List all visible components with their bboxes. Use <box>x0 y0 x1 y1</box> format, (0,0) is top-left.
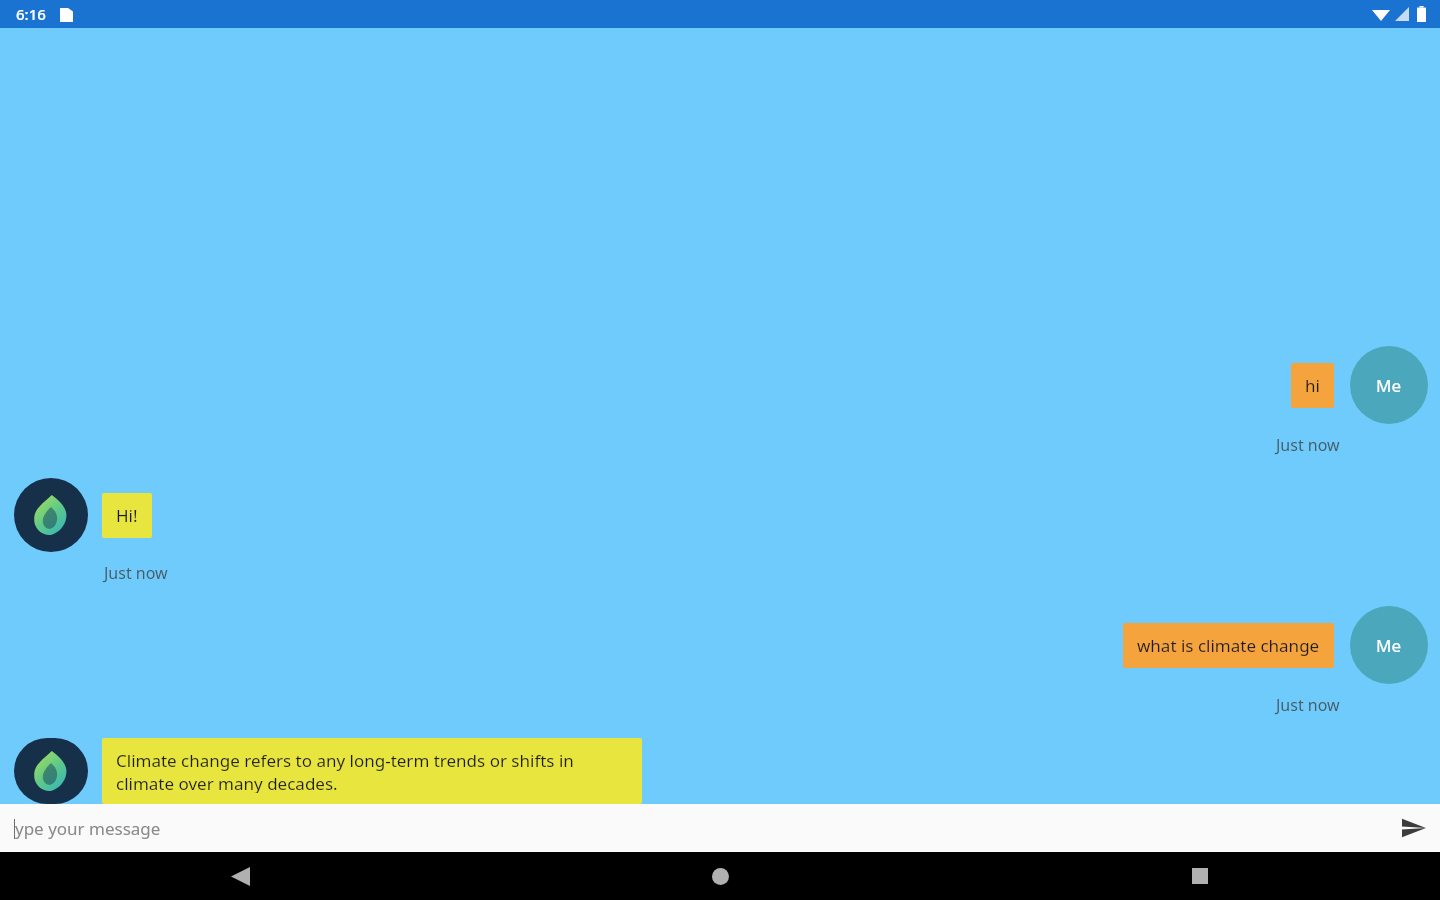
button[interactable]: hi <box>1291 363 1334 408</box>
button[interactable]: Back <box>0 852 480 900</box>
button[interactable]: what is climate change <box>1123 623 1334 668</box>
staticText: Hi! <box>116 504 138 527</box>
staticText: Me <box>1376 634 1402 657</box>
staticText: Climate change refers to any long-term t… <box>116 749 628 793</box>
button[interactable]: Climate change refers to any long-term t… <box>102 738 642 804</box>
button[interactable]: Send <box>1388 804 1440 852</box>
button[interactable]: Recents <box>960 852 1440 900</box>
staticText: what is climate change <box>1137 634 1320 657</box>
button[interactable]: ype your message <box>0 804 1388 852</box>
staticText: Just now <box>104 562 168 584</box>
staticText: ype your message <box>15 817 161 840</box>
staticText: Me <box>1376 374 1402 397</box>
button[interactable]: Home <box>480 852 960 900</box>
button[interactable]: Me <box>1350 346 1428 424</box>
staticText: Just now <box>1276 434 1340 456</box>
staticText: hi <box>1305 374 1320 397</box>
button[interactable]: Bot avatar <box>14 478 88 552</box>
staticText: 6:16 <box>16 4 46 24</box>
staticText: Just now <box>1276 694 1340 716</box>
button[interactable]: Bot avatar <box>14 738 88 804</box>
button[interactable]: Hi! <box>102 493 152 538</box>
button[interactable]: Me <box>1350 606 1428 684</box>
